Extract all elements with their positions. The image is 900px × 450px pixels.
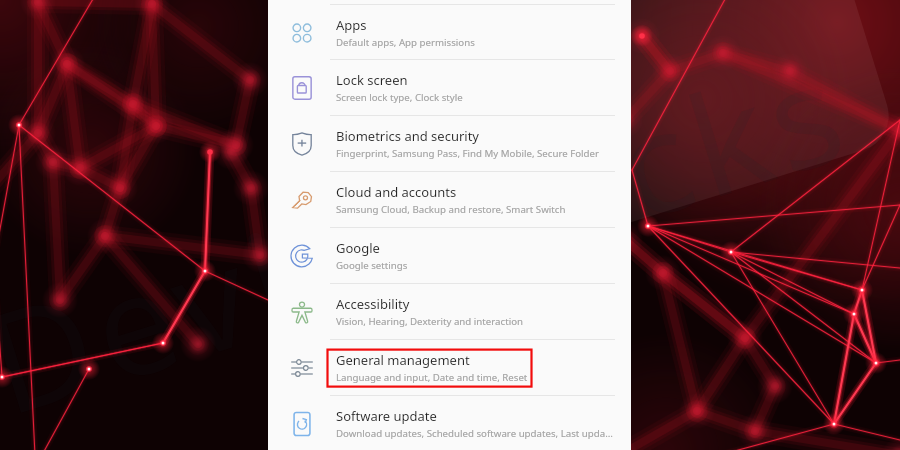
other: Biometrics and security [290,132,314,156]
button[interactable]: Apps [268,5,631,60]
staticText: Software update [336,407,437,425]
other: General management [290,356,314,380]
staticText: Apps [336,16,367,34]
button[interactable]: Biometrics and security [268,116,631,171]
other: Lock screen [290,76,314,100]
other: Cloud and accounts [290,188,314,212]
button[interactable]: Google [268,228,631,283]
staticText: Cloud and accounts [336,183,457,201]
button[interactable]: Cloud and accounts [268,172,631,227]
other: Apps [290,21,314,45]
button[interactable]: Software update [268,396,631,450]
staticText: Language and input, Date and time, Reset [336,371,528,384]
staticText: Default apps, App permissions [336,36,475,49]
staticText: Accessibility [336,295,410,313]
other: Accessibility [290,300,314,324]
staticText: Screen lock type, Clock style [336,91,463,104]
staticText: General management [336,351,470,369]
staticText: Samsung Cloud, Backup and restore, Smart… [336,203,566,216]
button[interactable]: General management [268,340,631,395]
staticText: Vision, Hearing, Dexterity and interacti… [336,315,524,328]
staticText: Fingerprint, Samsung Pass, Find My Mobil… [336,147,600,160]
staticText: Google [336,239,380,257]
staticText: Lock screen [336,71,408,89]
other: Software update [290,412,314,436]
staticText: Google settings [336,259,408,272]
button[interactable]: Lock screen [268,60,631,115]
staticText: Download updates, Scheduled software upd… [336,427,613,440]
staticText: Biometrics and security [336,127,480,145]
other: Google [290,244,314,268]
button[interactable]: Accessibility [268,284,631,339]
